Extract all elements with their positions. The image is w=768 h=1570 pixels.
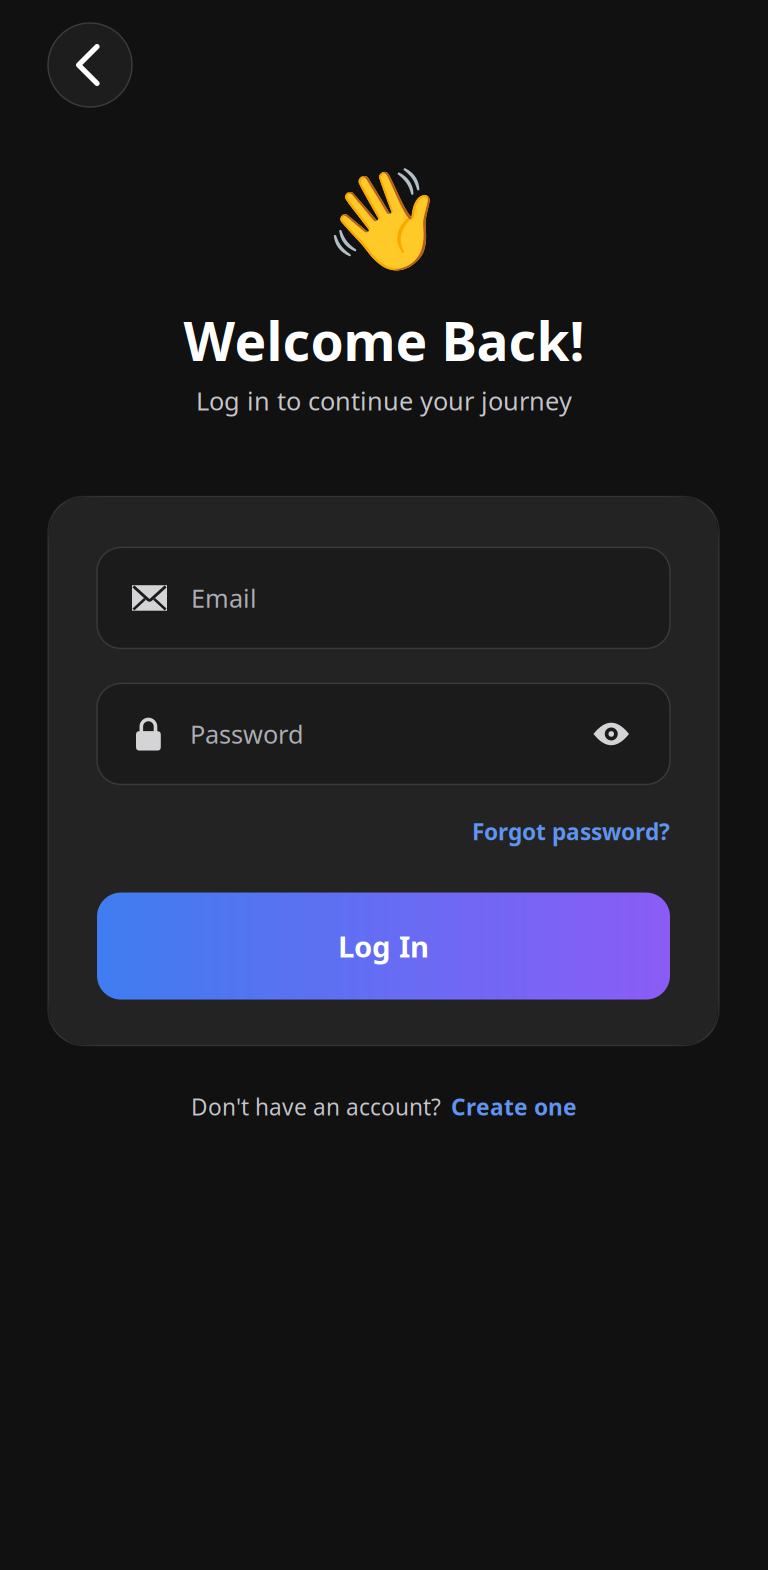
button[interactable]: Show password — [572, 699, 650, 768]
staticText: Log In — [338, 927, 429, 966]
staticText: 👋 — [322, 164, 445, 276]
staticText: Create one — [451, 1092, 577, 1122]
staticText: Email — [191, 581, 257, 615]
staticText: Don't have an account? — [191, 1092, 441, 1122]
button[interactable]: Log In — [97, 893, 670, 1000]
staticText: Password — [190, 717, 304, 751]
button[interactable]: Forgot password? — [472, 816, 670, 847]
button[interactable]: Email — [97, 547, 670, 648]
button[interactable]: Create one — [441, 1092, 577, 1122]
staticText: Forgot password? — [472, 816, 670, 847]
button[interactable]: Back — [48, 23, 132, 107]
staticText: Log in to continue your journey — [196, 384, 572, 417]
staticText: Welcome Back! — [183, 305, 584, 376]
